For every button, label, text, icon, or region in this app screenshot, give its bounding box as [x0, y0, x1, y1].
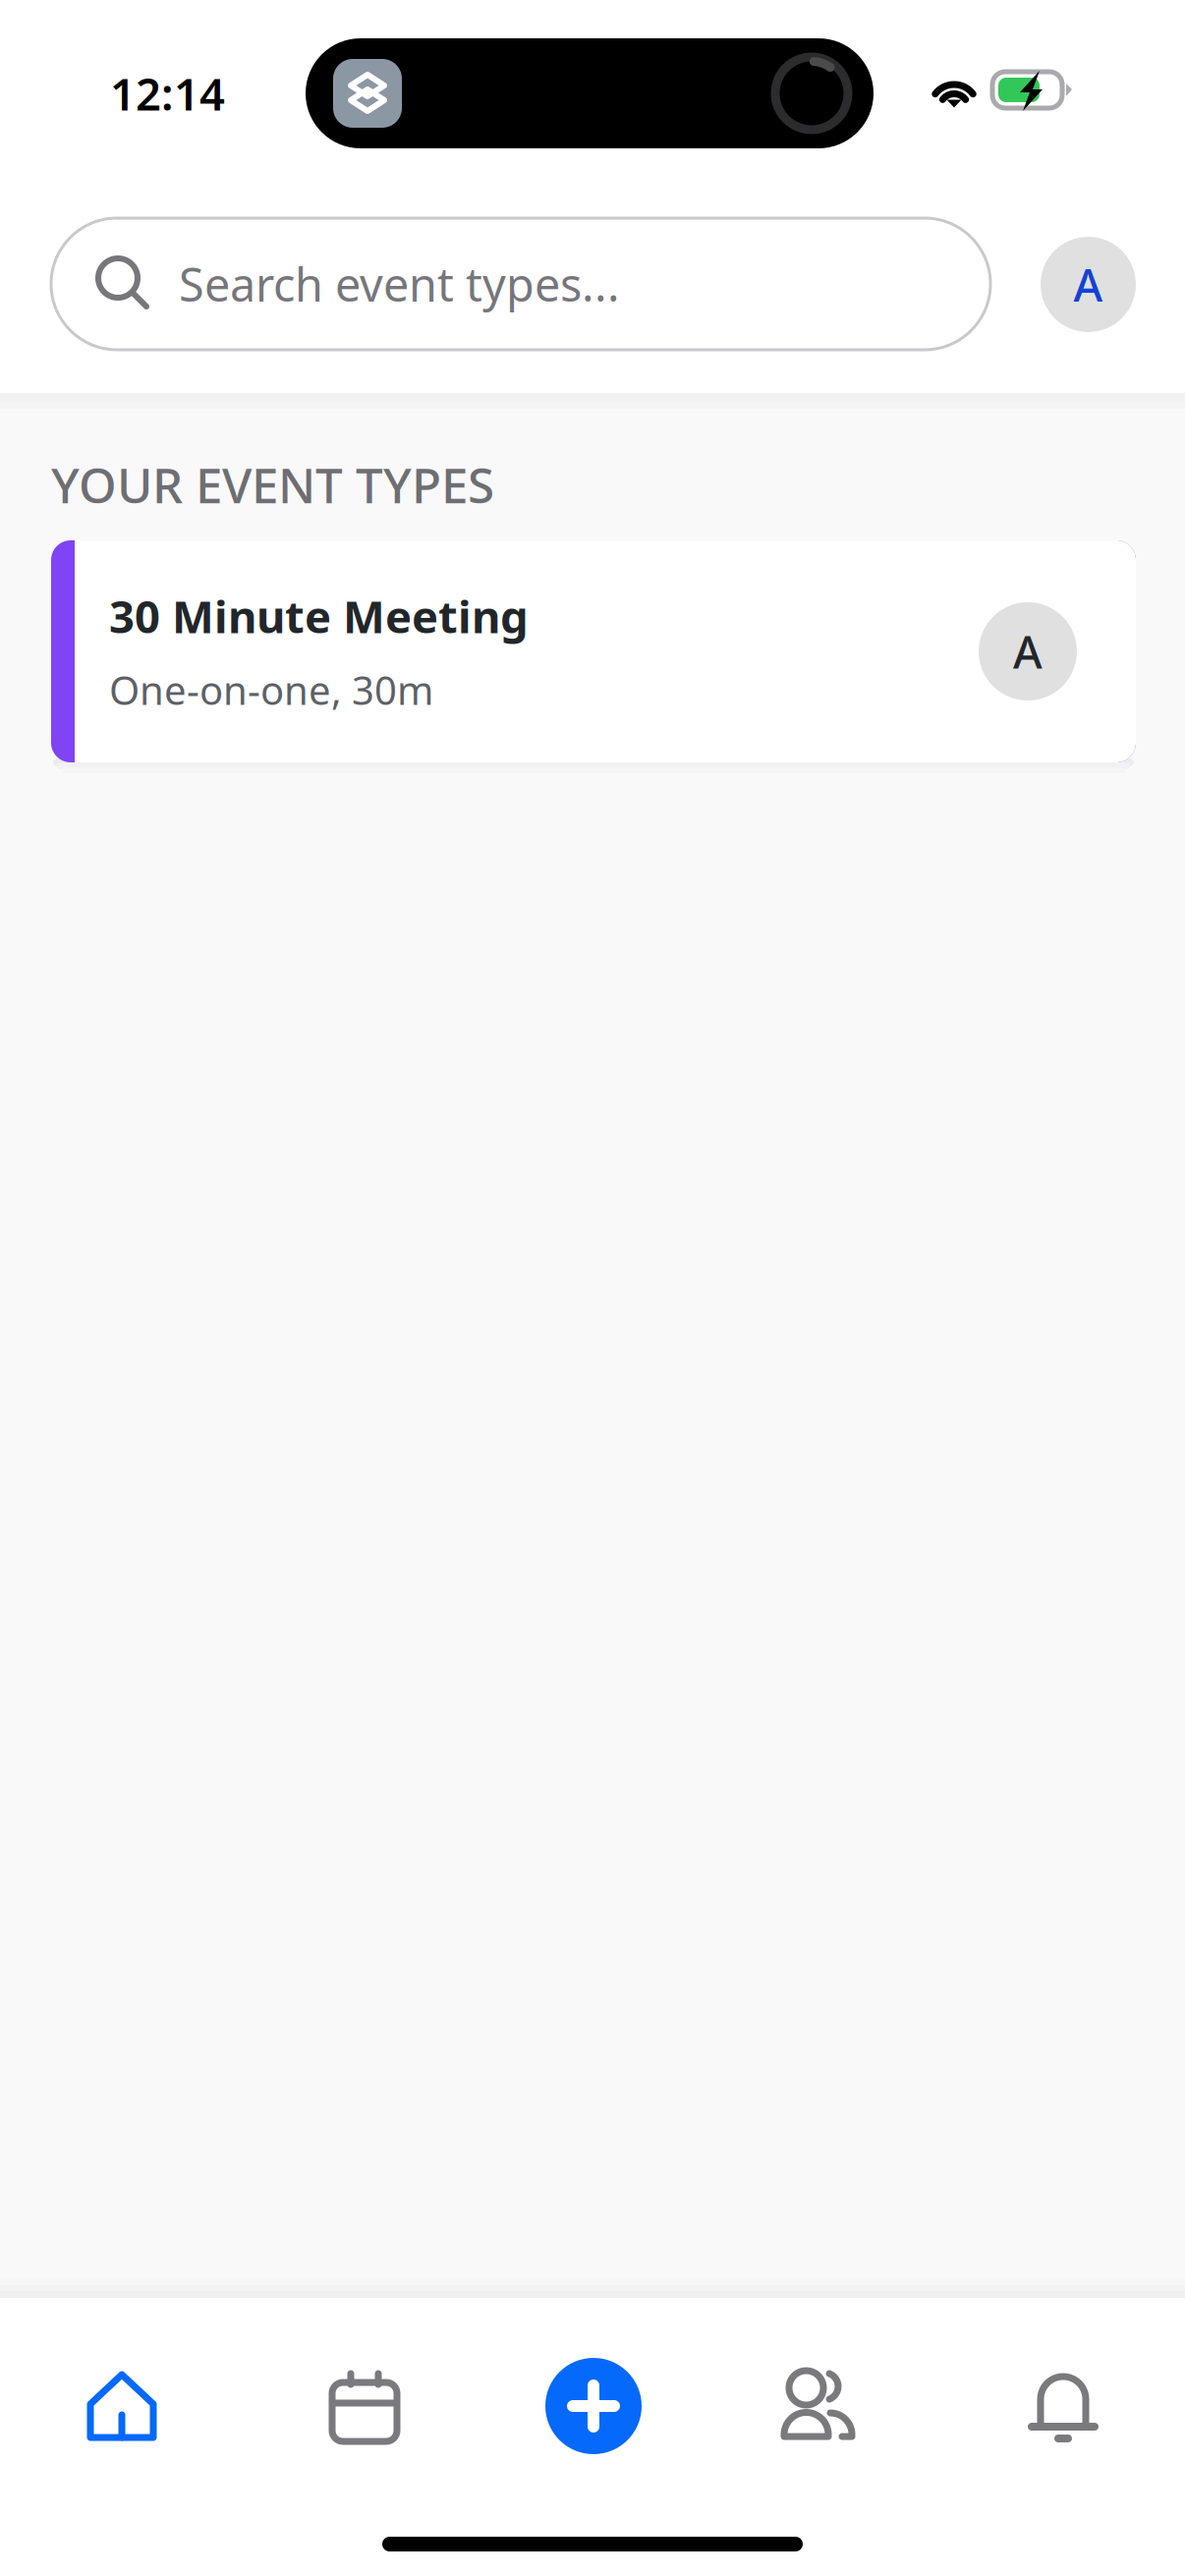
- staticText: Search event types...: [179, 253, 620, 314]
- staticText: A: [1013, 622, 1043, 681]
- staticText: One-on-one, 30m: [109, 664, 433, 716]
- button[interactable]: Home: [3, 2307, 240, 2492]
- button[interactable]: Contacts: [713, 2307, 950, 2492]
- button[interactable]: Notifications: [950, 2307, 1185, 2492]
- button[interactable]: 30 Minute Meeting: [51, 540, 1136, 762]
- button[interactable]: Create: [477, 2307, 713, 2492]
- staticText: YOUR EVENT TYPES: [51, 452, 494, 516]
- staticText: 30 Minute Meeting: [109, 586, 529, 646]
- staticText: 12:14: [110, 64, 225, 123]
- button[interactable]: Search event types...: [51, 218, 990, 350]
- button[interactable]: Profile: [1041, 237, 1136, 332]
- button[interactable]: Bookings: [240, 2307, 477, 2492]
- staticText: A: [1073, 255, 1103, 314]
